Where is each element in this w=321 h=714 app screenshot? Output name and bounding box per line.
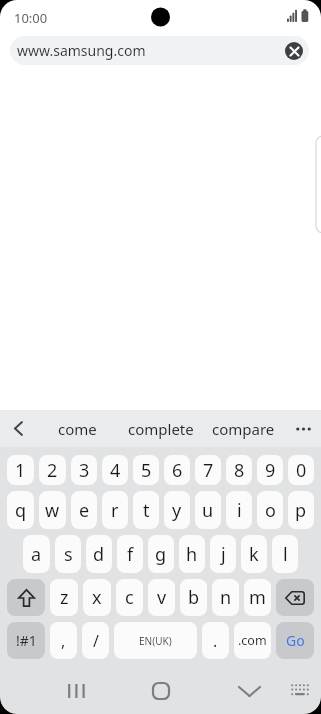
button[interactable]: 6 xyxy=(164,455,190,485)
staticText: 8 xyxy=(234,458,245,483)
button[interactable]: b xyxy=(180,579,207,616)
button[interactable]: p xyxy=(288,491,314,529)
staticText: m xyxy=(249,585,266,610)
staticText: z xyxy=(60,585,69,610)
staticText: 10:00 xyxy=(14,9,48,27)
button[interactable] xyxy=(7,579,45,616)
button[interactable]: a xyxy=(23,535,50,573)
staticText: .com xyxy=(238,632,267,649)
staticText: , xyxy=(61,630,66,652)
button[interactable]: Go xyxy=(276,622,314,659)
staticText: h xyxy=(186,542,198,567)
button[interactable]: come xyxy=(36,410,119,447)
button[interactable]: h xyxy=(179,535,205,573)
button[interactable]: g xyxy=(148,535,174,573)
staticText: q xyxy=(15,498,27,523)
staticText: v xyxy=(157,585,167,610)
button[interactable]: 1 xyxy=(7,455,34,485)
button[interactable]: w xyxy=(39,491,66,529)
button[interactable]: www.samsung.com xyxy=(10,36,309,65)
staticText: o xyxy=(265,498,276,523)
button[interactable]: s xyxy=(55,535,81,573)
staticText: 7 xyxy=(203,458,214,483)
button[interactable] xyxy=(145,675,177,707)
button[interactable]: complete xyxy=(119,410,202,447)
button[interactable]: 9 xyxy=(257,455,283,485)
button[interactable]: m xyxy=(244,579,271,616)
staticText: w xyxy=(45,498,60,523)
staticText: x xyxy=(92,585,102,610)
staticText: compare xyxy=(212,419,275,439)
button[interactable]: , xyxy=(50,622,77,659)
staticText: 2 xyxy=(47,458,58,483)
button[interactable] xyxy=(285,42,303,60)
button[interactable] xyxy=(276,579,314,616)
staticText: k xyxy=(249,542,259,567)
button[interactable]: j xyxy=(210,535,236,573)
button[interactable]: .com xyxy=(234,622,271,659)
button[interactable]: c xyxy=(116,579,143,616)
staticText: 5 xyxy=(141,458,152,483)
button[interactable]: z xyxy=(50,579,78,616)
button[interactable]: k xyxy=(241,535,267,573)
button[interactable]: e xyxy=(71,491,97,529)
button[interactable]: / xyxy=(82,622,109,659)
button[interactable]: compare xyxy=(202,410,285,447)
button[interactable]: 3 xyxy=(71,455,97,485)
staticText: f xyxy=(127,542,134,567)
button[interactable]: 4 xyxy=(102,455,128,485)
button[interactable]: o xyxy=(257,491,283,529)
staticText: d xyxy=(93,542,105,567)
staticText: come xyxy=(58,419,97,439)
staticText: l xyxy=(283,542,288,567)
staticText: !#1 xyxy=(16,631,37,650)
button[interactable]: 5 xyxy=(133,455,159,485)
button[interactable]: x xyxy=(83,579,111,616)
button[interactable]: l xyxy=(272,535,298,573)
button[interactable] xyxy=(286,676,314,704)
staticText: 6 xyxy=(172,458,183,483)
button[interactable]: v xyxy=(148,579,175,616)
staticText: www.samsung.com xyxy=(17,41,146,60)
button[interactable]: 2 xyxy=(39,455,66,485)
button[interactable]: 8 xyxy=(226,455,252,485)
staticText: complete xyxy=(128,419,194,439)
button[interactable]: . xyxy=(202,622,229,659)
button[interactable]: n xyxy=(212,579,239,616)
button[interactable]: q xyxy=(7,491,34,529)
button[interactable] xyxy=(285,410,321,447)
staticText: 4 xyxy=(110,458,121,483)
staticText: u xyxy=(202,498,214,523)
button[interactable]: f xyxy=(117,535,143,573)
staticText: g xyxy=(155,542,167,567)
staticText: 1 xyxy=(15,458,26,483)
staticText: t xyxy=(143,498,150,523)
button[interactable]: r xyxy=(102,491,128,529)
button[interactable]: !#1 xyxy=(7,622,45,659)
staticText: 0 xyxy=(296,458,307,483)
staticText: e xyxy=(79,498,90,523)
staticText: c xyxy=(125,585,134,610)
staticText: n xyxy=(220,585,232,610)
button[interactable]: u xyxy=(195,491,221,529)
staticText: . xyxy=(213,630,218,652)
button[interactable] xyxy=(60,675,92,707)
button[interactable] xyxy=(0,410,36,447)
staticText: 3 xyxy=(79,458,90,483)
staticText: 9 xyxy=(265,458,276,483)
staticText: a xyxy=(31,542,42,567)
staticText: EN(UK) xyxy=(139,634,172,648)
button[interactable]: t xyxy=(133,491,159,529)
button[interactable]: 0 xyxy=(288,455,314,485)
staticText: j xyxy=(221,542,226,567)
staticText: s xyxy=(64,542,73,567)
staticText: p xyxy=(295,498,307,523)
staticText: b xyxy=(188,585,200,610)
button[interactable]: EN(UK) xyxy=(114,622,197,659)
staticText: / xyxy=(93,630,99,652)
button[interactable] xyxy=(233,675,265,707)
button[interactable]: 7 xyxy=(195,455,221,485)
button[interactable]: i xyxy=(226,491,252,529)
button[interactable]: y xyxy=(164,491,190,529)
button[interactable]: d xyxy=(86,535,112,573)
